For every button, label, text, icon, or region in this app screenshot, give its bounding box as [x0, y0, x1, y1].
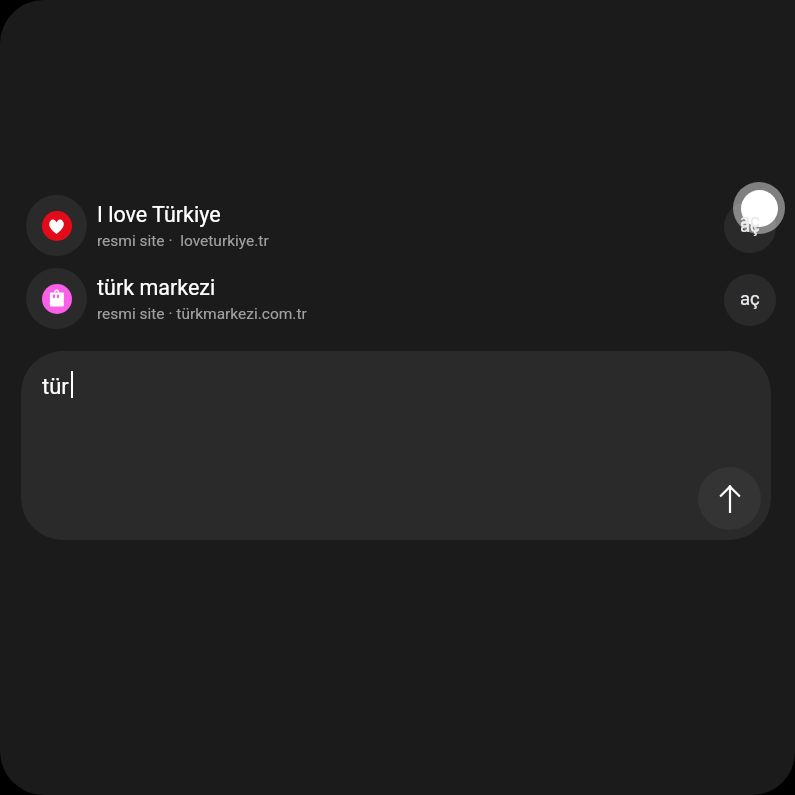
other: Shopping site — [48, 290, 64, 306]
button[interactable]: aç — [724, 201, 776, 253]
staticText: resmi site · türkmarkezi.com.tr — [97, 305, 307, 323]
button[interactable]: Shopping site — [0, 268, 795, 329]
staticText: tür — [42, 374, 69, 400]
staticText: aç — [740, 215, 760, 237]
staticText: aç — [740, 210, 760, 232]
other: Favourite site — [48, 218, 65, 235]
staticText: I love Türkiye — [97, 202, 221, 227]
button[interactable]: tür — [21, 351, 771, 540]
staticText: resmi site · loveturkiye.tr — [97, 232, 269, 250]
staticText: aç — [740, 288, 760, 310]
button[interactable]: Favourite site — [0, 195, 795, 256]
staticText: türk markezi — [97, 275, 216, 300]
button[interactable]: aç — [724, 274, 776, 326]
button[interactable]: Send — [698, 467, 761, 530]
